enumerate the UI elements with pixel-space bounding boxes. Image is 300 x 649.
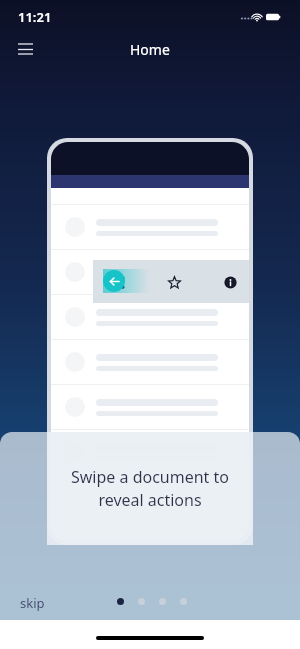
button[interactable]: skip [12,590,53,616]
button[interactable] [51,385,249,429]
button[interactable] [51,340,249,384]
staticText: Swipe a document to reveal actions [24,466,276,511]
button[interactable]: Favorite [161,269,187,295]
staticText: 11:21 [18,8,52,26]
button[interactable] [51,295,249,339]
button[interactable]: Menu [8,32,42,66]
button[interactable] [51,430,249,474]
staticText: skip [20,594,45,612]
button[interactable]: Back [103,270,125,292]
button[interactable] [51,250,249,294]
button[interactable] [51,205,249,249]
button[interactable]: Info [217,269,243,295]
staticText: Home [130,40,170,59]
button[interactable]: Share [105,269,131,295]
